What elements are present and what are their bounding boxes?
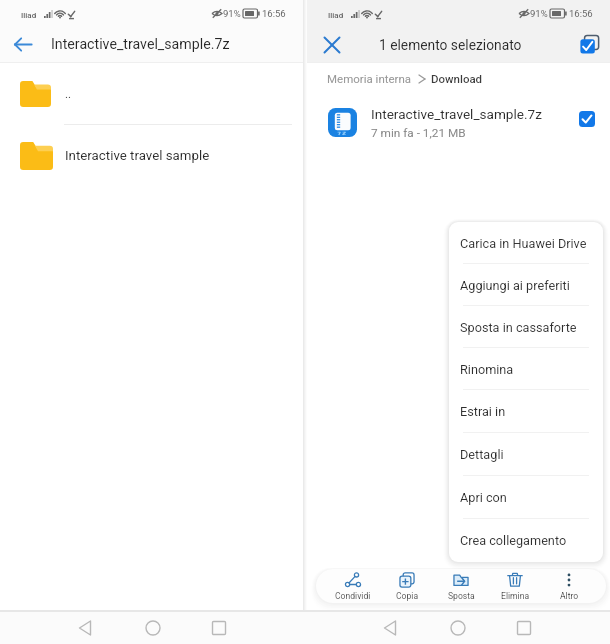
staticText: 16:56 [262, 8, 286, 19]
button[interactable]: Home [443, 613, 473, 643]
button[interactable]: Crea collegamento [449, 519, 603, 562]
staticText: Rinomina [460, 362, 514, 377]
staticText: 91% [223, 8, 241, 19]
button[interactable]: Home [138, 613, 168, 643]
staticText: 16:56 [569, 8, 593, 19]
button[interactable]: Back [71, 613, 101, 643]
button[interactable]: Back [376, 613, 406, 643]
staticText: Iliad [328, 11, 344, 20]
button[interactable]: Elimina [488, 569, 542, 603]
staticText: 7 min fa - 1,21 MB [371, 126, 466, 140]
button[interactable]: .. [0, 63, 303, 124]
staticText: Interactive travel sample [65, 148, 210, 164]
staticText: Altro [560, 591, 579, 601]
button[interactable]: Rinomina [449, 348, 603, 390]
button[interactable]: Sposta [434, 569, 488, 603]
staticText: 1 elemento selezionato [379, 37, 522, 53]
staticText: Copia [396, 591, 419, 601]
button[interactable]: Memoria interna [327, 72, 412, 85]
button[interactable]: Recents [509, 613, 539, 643]
staticText: .. [65, 87, 72, 100]
staticText: Elimina [501, 591, 530, 601]
staticText: Crea collegamento [460, 533, 567, 548]
staticText: Estrai in [460, 404, 506, 419]
button[interactable]: Apri con [449, 476, 603, 519]
button[interactable]: Back [0, 27, 46, 62]
staticText: Iliad [21, 11, 37, 20]
button[interactable]: Condividi [326, 569, 380, 603]
staticText: 91% [530, 8, 548, 19]
button[interactable]: Dettagli [449, 433, 603, 476]
staticText: Interactive_travel_sample.7z [51, 36, 230, 53]
button[interactable]: Carica in Huawei Drive [449, 222, 603, 264]
button[interactable]: Estrai in [449, 390, 603, 433]
button[interactable]: Aggiungi ai preferiti [449, 264, 603, 306]
button[interactable]: Interactive travel sample [0, 125, 303, 186]
staticText: Carica in Huawei Drive [460, 236, 587, 251]
button[interactable]: Recents [204, 613, 234, 643]
staticText: Condividi [335, 591, 371, 601]
staticText: Apri con [460, 490, 507, 505]
button[interactable]: Close [307, 27, 357, 62]
button[interactable]: Altro [542, 569, 596, 603]
button[interactable]: Copia [380, 569, 434, 603]
staticText: Sposta in cassaforte [460, 320, 577, 335]
staticText: Aggiungi ai preferiti [460, 278, 570, 293]
button[interactable]: Interactive_travel_sample.7z [307, 94, 610, 144]
button[interactable]: Download [431, 72, 483, 85]
staticText: Sposta [448, 591, 475, 601]
staticText: Dettagli [460, 447, 504, 462]
button[interactable]: Selected [563, 97, 610, 141]
button[interactable]: Sposta in cassaforte [449, 306, 603, 348]
staticText: Interactive_travel_sample.7z [371, 106, 542, 122]
button[interactable]: Select all [569, 27, 610, 62]
